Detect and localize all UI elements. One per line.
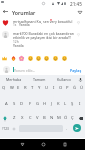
button[interactable]: Back <box>1 7 10 16</box>
staticText: D <box>20 101 24 107</box>
button[interactable]: Voice input <box>77 75 84 84</box>
staticText: mrtsadhasani Kıs, sen very beautiful <box>13 19 73 24</box>
staticText: Y <box>38 85 41 91</box>
button[interactable]: F <box>26 98 34 110</box>
button[interactable]: Emoji <box>42 54 51 63</box>
button[interactable]: Emoji <box>11 123 17 135</box>
button[interactable]: Ş <box>69 98 76 110</box>
button[interactable]: Emoji <box>60 54 69 63</box>
button[interactable]: V <box>34 112 41 124</box>
button[interactable]: Tamam <box>27 75 52 84</box>
button[interactable]: Paylaş <box>70 68 82 73</box>
staticText: K <box>57 101 60 107</box>
staticText: Yanıtla <box>19 23 30 27</box>
button[interactable]: Ğ <box>71 82 78 94</box>
button[interactable]: . <box>64 123 70 135</box>
button[interactable]: Kullanıcı <box>52 75 77 84</box>
button[interactable]: B <box>41 112 48 124</box>
button[interactable]: G <box>34 98 41 110</box>
staticText: H <box>43 101 47 107</box>
staticText: I <box>79 101 81 107</box>
staticText: B <box>43 115 46 121</box>
button[interactable]: ?123 <box>1 123 9 135</box>
button[interactable]: Emoji <box>26 54 35 63</box>
button[interactable]: R <box>22 82 29 94</box>
button[interactable]: Q <box>0 82 8 94</box>
staticText: 12h <box>13 40 19 44</box>
button[interactable]: W <box>8 82 15 94</box>
staticText: C <box>29 115 32 121</box>
button[interactable]: L <box>62 98 69 110</box>
button[interactable]: J <box>48 98 55 110</box>
button[interactable]: Home <box>37 139 49 150</box>
staticText: O <box>59 85 63 91</box>
button[interactable]: Emoji <box>0 54 9 63</box>
button[interactable]: Ç <box>69 112 76 124</box>
staticText: S <box>13 101 16 107</box>
button[interactable]: Like comment <box>75 31 81 37</box>
staticText: 21:45 <box>70 1 82 7</box>
button[interactable]: K <box>55 98 62 110</box>
button[interactable]: Merhaba <box>1 75 27 84</box>
button[interactable]: Y <box>36 82 43 94</box>
button[interactable]: Ö <box>62 112 69 124</box>
button[interactable]: T <box>29 82 36 94</box>
staticText: N <box>50 115 54 121</box>
button[interactable]: X <box>18 112 26 124</box>
button[interactable]: Z <box>10 112 18 124</box>
staticText: Paylaş <box>70 68 82 73</box>
staticText: . <box>66 126 68 132</box>
staticText: A <box>5 101 8 107</box>
staticText: F <box>29 101 32 107</box>
button[interactable]: U <box>43 82 50 94</box>
staticText: J <box>51 101 53 107</box>
button[interactable]: Send <box>73 124 81 132</box>
staticText: L <box>64 101 67 107</box>
staticText: W <box>10 85 14 91</box>
staticText: 1s <box>13 23 17 27</box>
staticText: Ö <box>64 115 68 121</box>
button[interactable]: Emoji <box>17 54 26 63</box>
staticText: V <box>36 115 39 121</box>
button[interactable]: Emoji <box>51 54 60 63</box>
button[interactable]: S <box>10 98 18 110</box>
staticText: Ğ <box>73 85 77 91</box>
button[interactable]: Backspace <box>77 112 85 124</box>
button[interactable]: Back <box>16 139 28 150</box>
staticText: Z <box>13 115 16 121</box>
button[interactable]: Ü <box>78 82 85 94</box>
button[interactable]: Your profile <box>3 66 10 73</box>
staticText: ?123 <box>2 127 9 131</box>
staticText: E <box>17 85 20 91</box>
button[interactable]: C <box>26 112 34 124</box>
staticText: P <box>66 85 69 91</box>
staticText: Yorum ekle... <box>14 68 36 73</box>
staticText: Kullanıcı <box>57 77 72 82</box>
button[interactable]: Emoji <box>34 54 43 63</box>
staticText: Yorumlar <box>12 9 36 16</box>
button[interactable]: N <box>48 112 55 124</box>
button[interactable]: Direct messages <box>75 8 84 17</box>
button[interactable]: Like comment <box>75 19 81 25</box>
button[interactable]: Emoji <box>9 54 18 63</box>
button[interactable]: E <box>15 82 22 94</box>
staticText: U <box>45 85 49 91</box>
button[interactable]: A <box>2 98 10 110</box>
button[interactable]: D <box>18 98 26 110</box>
button[interactable]: Shift <box>1 112 9 124</box>
button[interactable]: M <box>55 112 62 124</box>
staticText: mark700 Buradaki en çok kazandıran etkin… <box>13 31 75 40</box>
button[interactable]: Yanıtla <box>19 23 30 27</box>
staticText: Merhaba <box>6 77 22 82</box>
staticText: Yanıtla <box>13 44 24 48</box>
button[interactable]: I <box>76 98 83 110</box>
button[interactable]: Yanıtla <box>13 44 24 48</box>
button[interactable]: Recent apps <box>59 139 71 150</box>
button[interactable]: I <box>50 82 57 94</box>
button[interactable]: P <box>64 82 71 94</box>
button[interactable]: H <box>41 98 48 110</box>
staticText: Q <box>2 85 6 91</box>
staticText: T <box>31 85 34 91</box>
button[interactable]: O <box>57 82 64 94</box>
